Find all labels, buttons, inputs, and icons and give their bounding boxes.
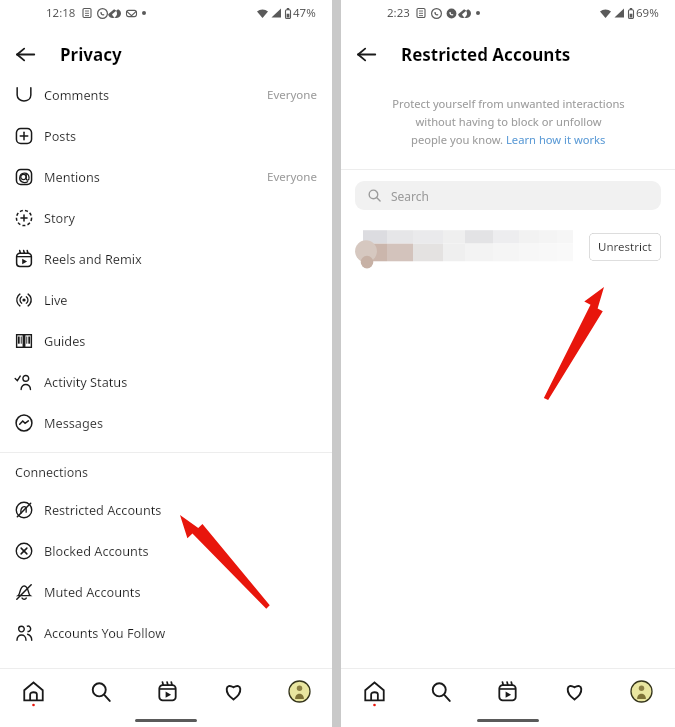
button[interactable]: Home	[0, 669, 67, 714]
staticText: Protect yourself from unwanted interacti…	[392, 96, 625, 111]
button[interactable]: Restricted Accounts	[0, 489, 332, 530]
staticText: Reels and Remix	[44, 250, 142, 267]
staticText: Unrestrict	[598, 239, 652, 255]
staticText: Activity Status	[44, 373, 128, 390]
button[interactable]: Posts	[0, 115, 332, 156]
button[interactable]: Search	[355, 181, 661, 210]
button[interactable]: Reels	[134, 669, 200, 714]
staticText: Privacy	[60, 43, 122, 66]
staticText: people you know.	[411, 132, 506, 147]
button[interactable]: Mentions	[0, 156, 332, 197]
button[interactable]: Home	[341, 669, 407, 714]
button[interactable]: Blocked Accounts	[0, 530, 332, 571]
button[interactable]: Activity	[200, 669, 266, 714]
staticText: Everyone	[267, 87, 317, 103]
button[interactable]: Comments	[0, 74, 332, 115]
button[interactable]: Reels and Remix	[0, 238, 332, 279]
staticText: Restricted Accounts	[44, 501, 162, 518]
staticText: Guides	[44, 332, 86, 349]
staticText: Muted Accounts	[44, 583, 141, 600]
button[interactable]: Reels	[474, 669, 541, 714]
staticText: Messages	[44, 414, 103, 431]
staticText: 69%	[636, 5, 659, 21]
staticText: Accounts You Follow	[44, 624, 166, 641]
staticText: Everyone	[267, 169, 317, 185]
staticText: Blocked Accounts	[44, 542, 149, 559]
button[interactable]: Profile	[608, 669, 675, 714]
button[interactable]: Profile	[266, 669, 332, 714]
staticText: Comments	[44, 86, 110, 103]
button[interactable]: Unrestrict	[589, 233, 661, 261]
button[interactable]: Story	[0, 197, 332, 238]
staticText: Live	[44, 291, 68, 308]
staticText: without having to block or unfollow	[415, 114, 602, 129]
staticText: Posts	[44, 127, 77, 144]
button[interactable]: Accounts You Follow	[0, 612, 332, 653]
button[interactable]: Messages	[0, 402, 332, 443]
button[interactable]: Muted Accounts	[0, 571, 332, 612]
button[interactable]: Back	[7, 37, 43, 71]
button[interactable]: Search	[67, 669, 134, 714]
button[interactable]: Live	[0, 279, 332, 320]
staticText: Restricted Accounts	[401, 43, 571, 66]
button[interactable]: Back	[348, 37, 384, 71]
staticText: Connections	[15, 464, 88, 481]
button[interactable]: Learn how it works	[506, 132, 606, 147]
button[interactable]: Activity	[541, 669, 608, 714]
staticText: 12:18	[46, 5, 76, 21]
staticText: 47%	[293, 5, 316, 21]
staticText: Story	[44, 209, 75, 226]
button[interactable]: Search	[407, 669, 474, 714]
staticText: Search	[391, 188, 429, 204]
staticText: Mentions	[44, 168, 100, 185]
staticText: 2:23	[387, 5, 410, 21]
button[interactable]: Activity Status	[0, 361, 332, 402]
button[interactable]: Guides	[0, 320, 332, 361]
button[interactable]: Unrestrict	[341, 224, 675, 270]
